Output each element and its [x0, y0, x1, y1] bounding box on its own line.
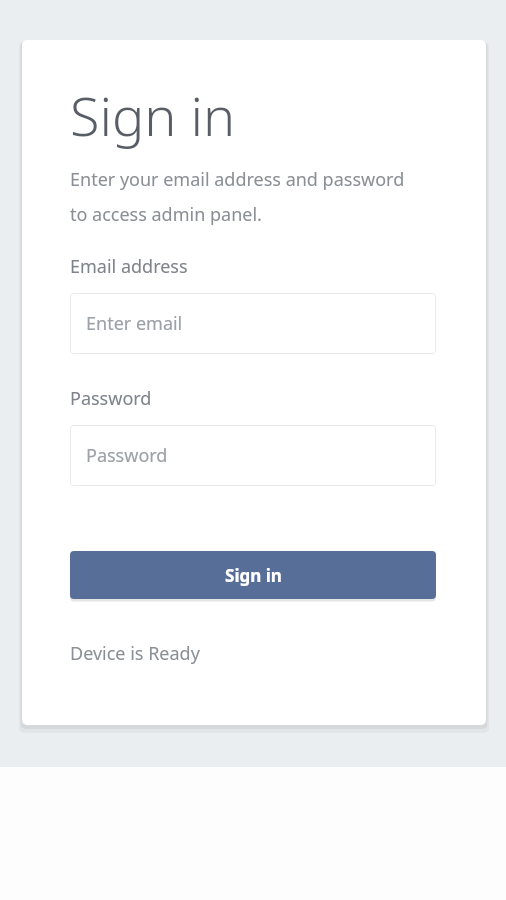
- staticText: Email address: [70, 254, 188, 279]
- staticText: Enter email: [86, 311, 183, 336]
- staticText: Sign in: [70, 78, 236, 152]
- button[interactable]: Enter email: [70, 293, 436, 354]
- staticText: Sign in: [225, 564, 282, 587]
- staticText: Password: [86, 443, 168, 468]
- staticText: Device is Ready: [70, 641, 200, 666]
- button[interactable]: Sign in: [70, 551, 436, 599]
- button[interactable]: Password: [70, 425, 436, 486]
- staticText: Enter your email address and password to…: [70, 167, 405, 227]
- staticText: Password: [70, 386, 152, 411]
